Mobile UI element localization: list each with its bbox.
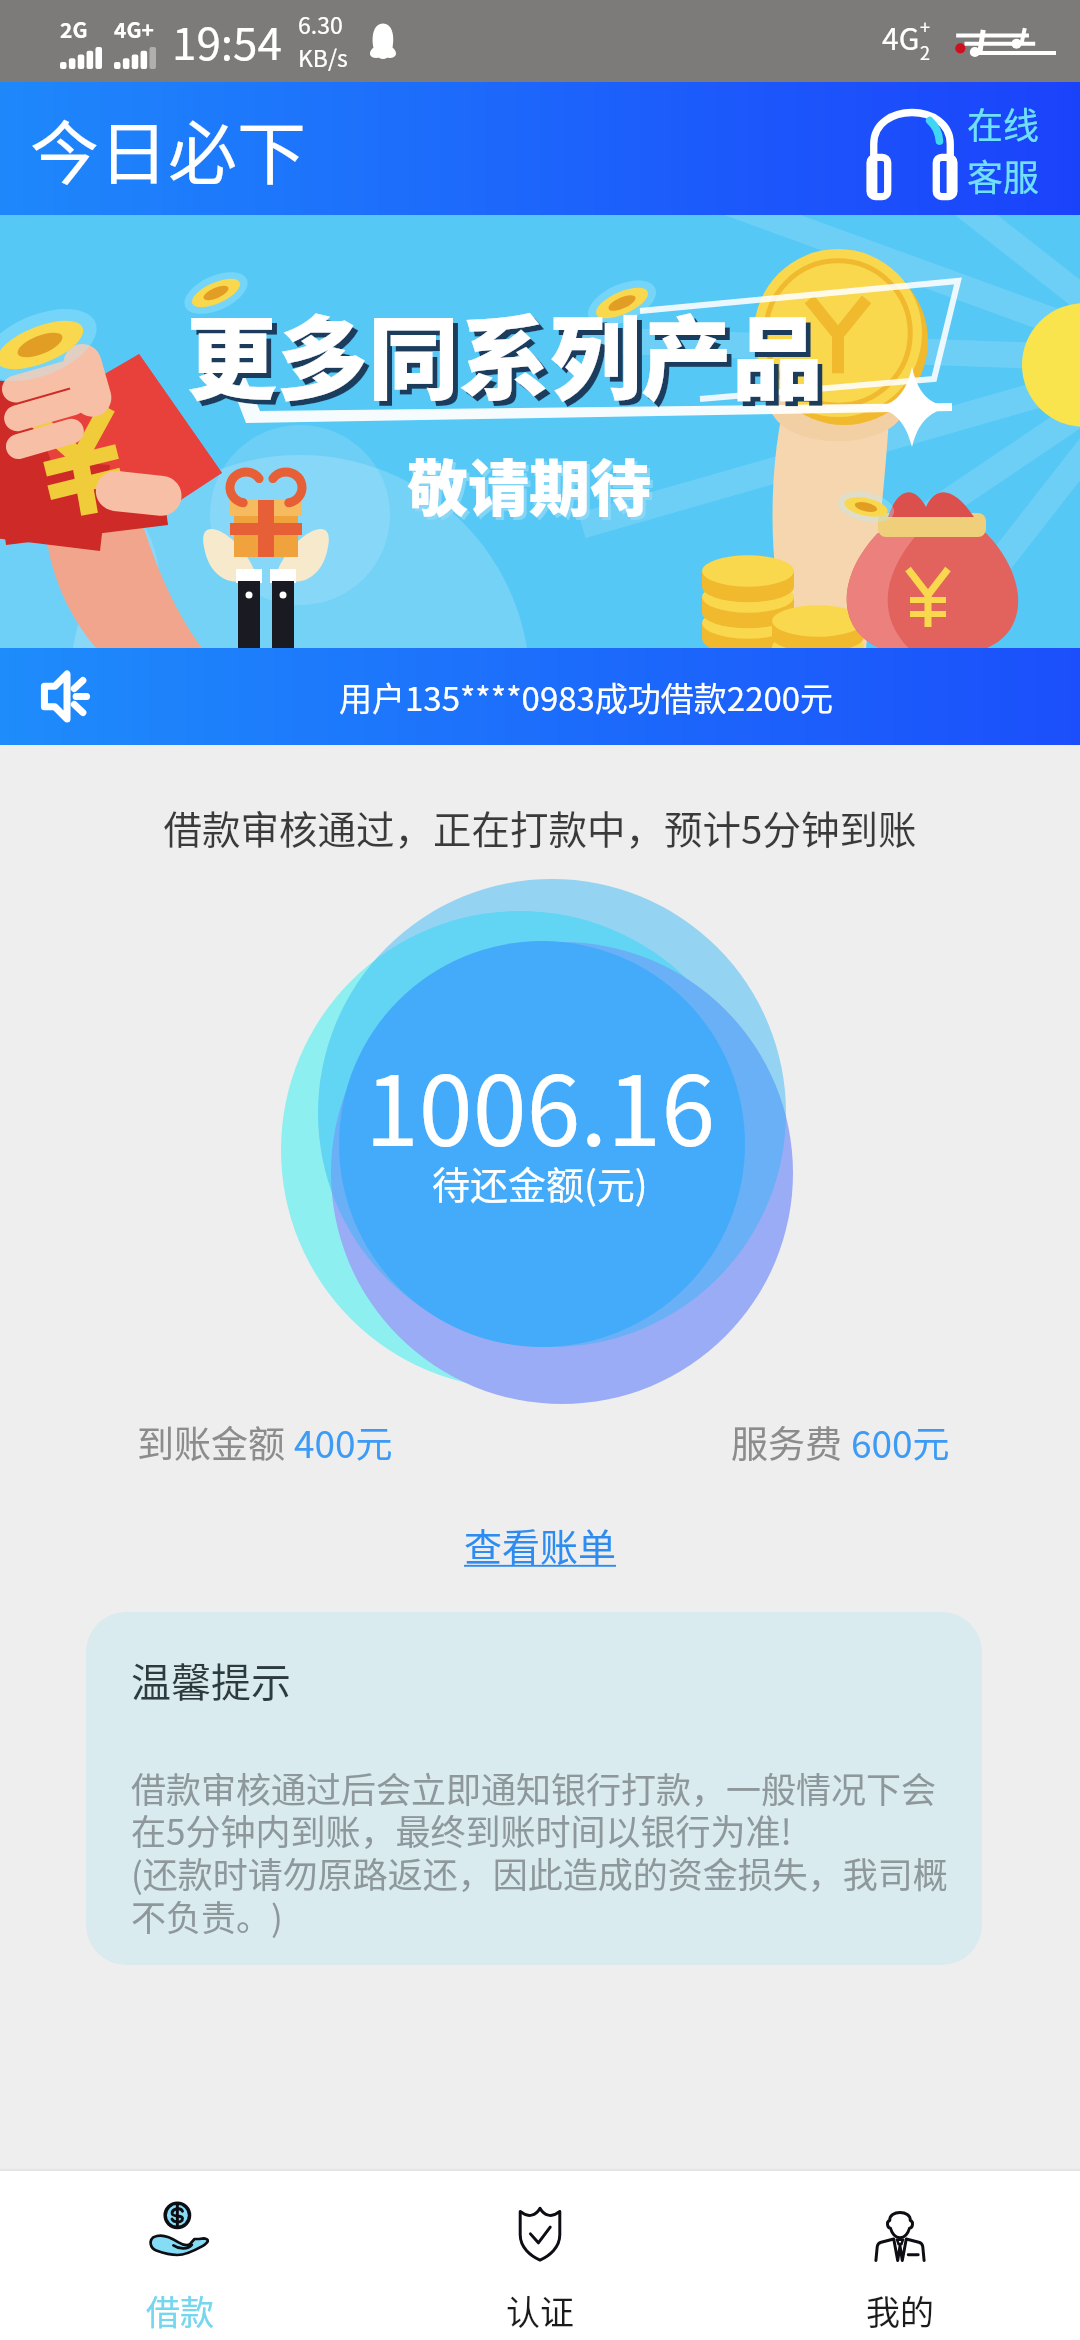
staticText: 借款审核通过，正在打款中，预计5分钟到账 — [0, 799, 1080, 855]
staticText: 借款 — [146, 2286, 214, 2335]
button[interactable]: 认证 — [360, 2172, 720, 2339]
staticText: 4G+ — [114, 14, 154, 44]
staticText: 到账金额 — [137, 1415, 294, 1469]
staticText: 服务费 — [731, 1415, 851, 1469]
staticText: KB/s — [298, 40, 348, 73]
button[interactable]: 借款 — [0, 2172, 360, 2339]
button[interactable]: 在线客服 — [865, 97, 1044, 201]
staticText: 敬请期待 — [407, 440, 652, 528]
staticText: 19:54 — [172, 9, 282, 73]
staticText: 600元 — [851, 1415, 950, 1469]
staticText: 认证 — [506, 2286, 574, 2335]
staticText: 客服 — [967, 149, 1040, 201]
staticText: 1006.16 — [365, 1033, 715, 1173]
staticText: 400元 — [294, 1415, 393, 1469]
staticText: 借款审核通过后会立即通知银行打款，一般情况下会 在5分钟内到账，最终到账时间以银… — [131, 1762, 948, 1942]
staticText: 更多同系列产品 — [191, 291, 829, 423]
staticText: 更多同系列产品 — [186, 286, 824, 418]
staticText: 2 — [920, 39, 930, 65]
staticText: 用户135****0983成功借款2200元 — [339, 673, 834, 721]
button[interactable]: 公告 — [0, 648, 1080, 745]
staticText: 温馨提示 — [131, 1651, 291, 1709]
staticText: 待还金额(元) — [432, 1155, 648, 1210]
staticText: 2G — [60, 14, 88, 44]
staticText: 在线 — [967, 97, 1040, 149]
staticText: 敬请期待 — [410, 443, 655, 531]
staticText: + — [920, 13, 930, 39]
staticText: 查看账单 — [464, 1517, 617, 1572]
button[interactable]: 查看账单 — [450, 1511, 631, 1578]
staticText: 4G — [882, 15, 920, 58]
button[interactable]: 我的 — [720, 2172, 1080, 2339]
staticText: 今日必下 — [30, 99, 306, 199]
other: 公告 — [42, 673, 103, 720]
staticText: 6.30 — [298, 7, 343, 40]
staticText: 我的 — [866, 2286, 934, 2335]
